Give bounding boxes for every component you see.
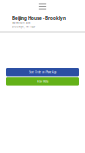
staticText: Beijing House - Brooklyn xyxy=(12,15,66,21)
staticText: 900 Wilson Ave xyxy=(12,21,30,25)
button[interactable]: View Menu xyxy=(6,77,79,86)
button[interactable]: Start Order on iPhone App xyxy=(6,68,79,76)
button[interactable]: Menu xyxy=(37,2,48,11)
staticText: Start Order on iPhone App xyxy=(29,70,56,74)
staticText: View Menu xyxy=(37,80,48,83)
staticText: Brooklyn, NY 11207 xyxy=(12,25,35,28)
